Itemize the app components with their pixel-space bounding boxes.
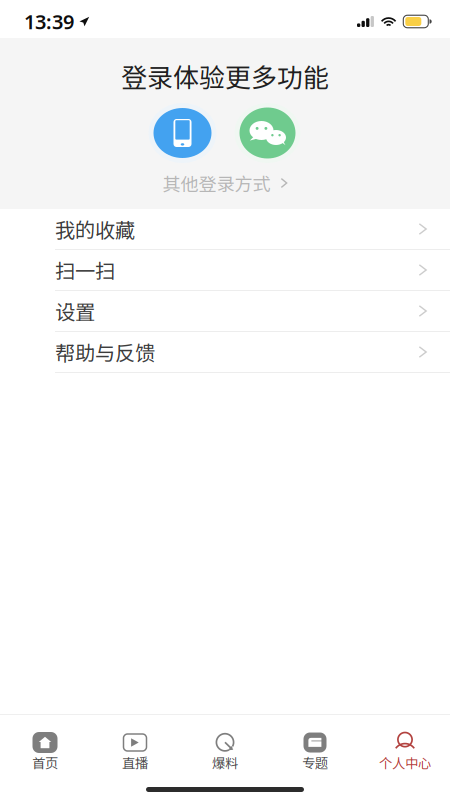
button[interactable]: 爆料 — [180, 715, 270, 773]
button[interactable]: 手机号登录 — [152, 103, 212, 163]
staticText: 直播 — [122, 753, 148, 772]
button[interactable]: 微信登录 — [237, 103, 297, 163]
button[interactable]: 直播 — [90, 715, 180, 773]
staticText: 专题 — [302, 753, 328, 772]
button[interactable]: 专题 — [270, 715, 360, 773]
staticText: 首页 — [32, 753, 58, 772]
staticText: 我的收藏 — [55, 214, 135, 244]
staticText: 设置 — [55, 296, 95, 326]
staticText: 个人中心 — [379, 753, 431, 772]
staticText: 其他登录方式 — [162, 170, 270, 196]
staticText: 爆料 — [212, 753, 238, 772]
button[interactable]: 设置 — [0, 291, 450, 332]
staticText: 帮助与反馈 — [55, 337, 155, 367]
button[interactable]: 其他登录方式 — [148, 171, 301, 195]
button[interactable]: 帮助与反馈 — [0, 332, 450, 373]
button[interactable]: 个人中心 — [360, 715, 450, 773]
button[interactable]: 扫一扫 — [0, 250, 450, 291]
staticText: 13:39 — [24, 8, 74, 35]
button[interactable]: 首页 — [0, 715, 90, 773]
button[interactable]: 我的收藏 — [0, 209, 450, 250]
staticText: 扫一扫 — [55, 255, 115, 285]
staticText: 登录体验更多功能 — [121, 57, 329, 95]
